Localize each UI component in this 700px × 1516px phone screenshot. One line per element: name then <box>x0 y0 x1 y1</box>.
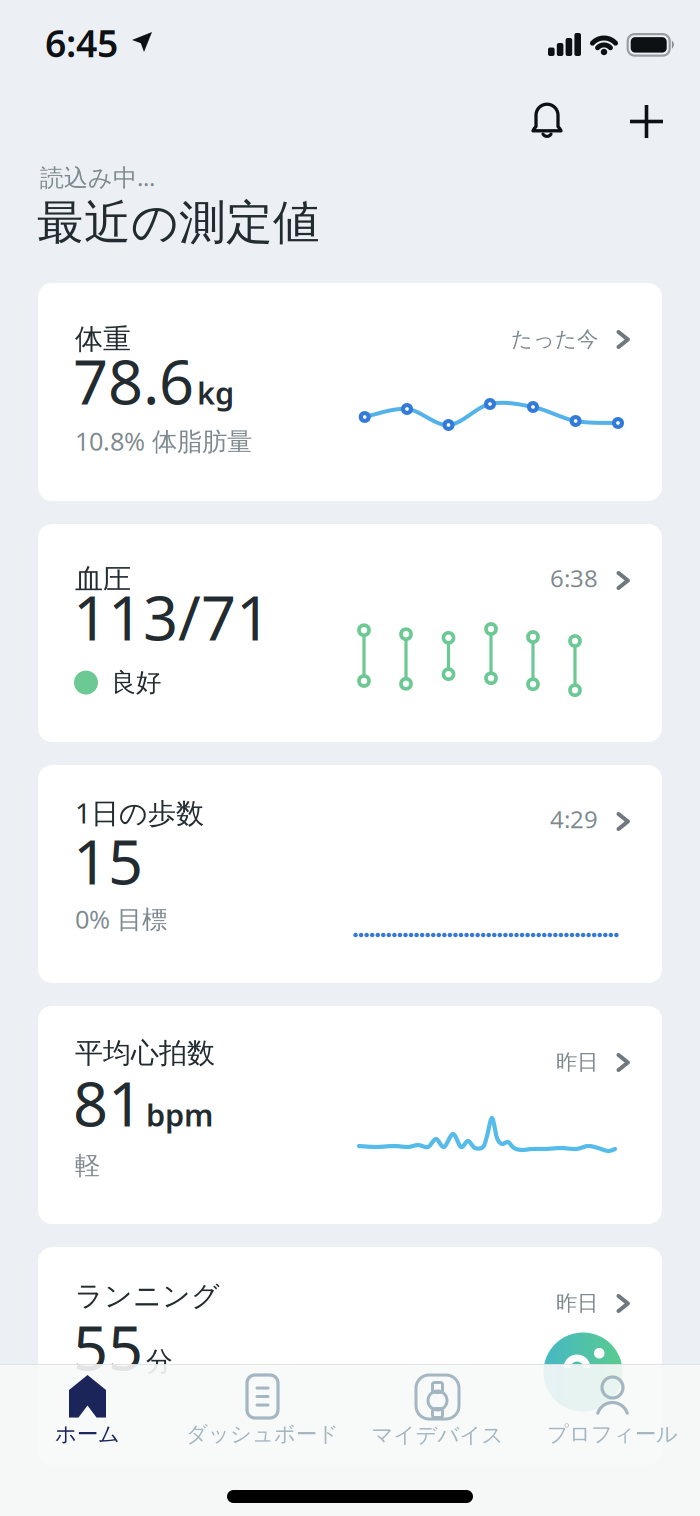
staticText: 昨日 <box>556 1290 598 1316</box>
staticText: 15 <box>73 820 143 901</box>
staticText: 55 <box>73 1306 143 1387</box>
staticText: 最近の測定値 <box>37 194 320 251</box>
staticText: 1日の歩数 <box>75 794 204 831</box>
staticText: 分 <box>146 1345 173 1378</box>
button[interactable]: 1日の歩数 <box>38 765 662 983</box>
button[interactable]: ランニング <box>38 1247 662 1465</box>
button[interactable]: 体重 <box>38 283 662 501</box>
staticText: 78.6 <box>73 340 194 421</box>
button[interactable] <box>531 102 563 140</box>
button[interactable]: ダッシュボード <box>175 1375 350 1447</box>
staticText: ダッシュボード <box>186 1421 339 1447</box>
staticText: 4:29 <box>550 803 598 835</box>
staticText: 113/71 <box>73 576 271 657</box>
button[interactable] <box>630 105 663 138</box>
button[interactable]: プロフィール <box>525 1375 700 1447</box>
staticText: プロフィール <box>547 1421 678 1447</box>
staticText: マイデバイス <box>371 1422 503 1448</box>
button[interactable]: 平均心拍数 <box>38 1006 662 1224</box>
staticText: 81 <box>73 1062 143 1143</box>
staticText: 血圧 <box>75 562 131 596</box>
staticText: 0% 目標 <box>75 902 167 936</box>
staticText: 平均心拍数 <box>75 1036 215 1070</box>
button[interactable]: マイデバイス <box>350 1375 525 1448</box>
staticText: 良好 <box>111 667 161 698</box>
staticText: 体重 <box>75 322 131 356</box>
staticText: 6:38 <box>550 562 598 594</box>
staticText: kg <box>197 372 234 413</box>
staticText: 昨日 <box>556 1049 598 1075</box>
staticText: bpm <box>146 1094 213 1135</box>
staticText: 軽 <box>75 1150 100 1181</box>
staticText: 6:45 <box>45 18 118 68</box>
staticText: 10.8% 体脂肪量 <box>75 424 252 458</box>
button[interactable]: ホーム <box>0 1375 175 1447</box>
button[interactable]: 血圧 <box>38 524 662 742</box>
staticText: 読込み中... <box>40 161 155 193</box>
staticText: たった今 <box>511 326 598 352</box>
staticText: ランニング <box>75 1279 220 1313</box>
staticText: ホーム <box>55 1421 120 1447</box>
